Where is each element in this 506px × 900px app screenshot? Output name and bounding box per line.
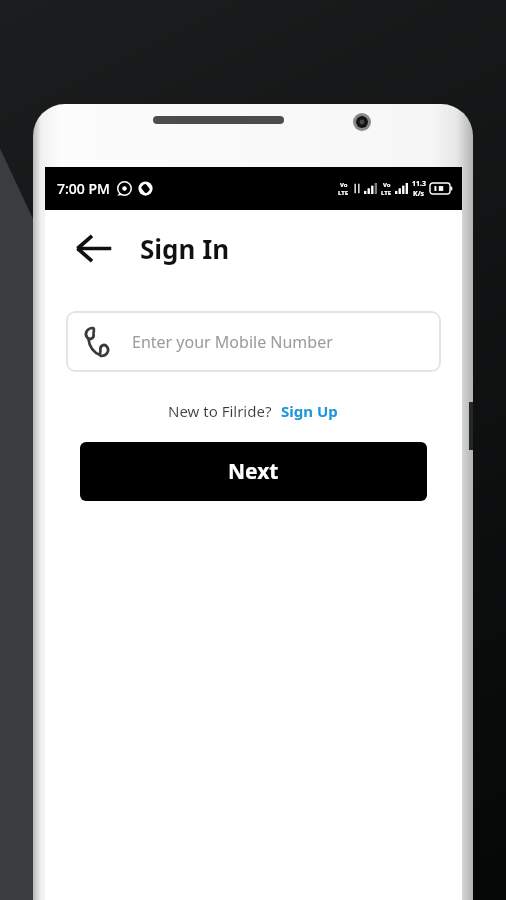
button[interactable]: Sign Up: [279, 399, 340, 423]
staticText: Vo: [340, 181, 348, 189]
staticText: New to Filride?: [168, 401, 272, 421]
button[interactable]: Next: [80, 442, 427, 501]
staticText: Next: [228, 457, 279, 486]
staticText: LTE: [381, 189, 392, 197]
staticText: Sign Up: [281, 401, 338, 421]
staticText: K/s: [413, 189, 425, 199]
button[interactable]: Enter your Mobile Number: [66, 311, 441, 372]
staticText: Sign In: [140, 231, 230, 266]
staticText: Enter your Mobile Number: [132, 331, 333, 353]
staticText: 11.3: [412, 179, 426, 189]
button[interactable]: Back: [71, 226, 116, 271]
staticText: 7:00 PM: [57, 179, 110, 198]
staticText: LTE: [338, 189, 349, 197]
staticText: Vo: [383, 181, 391, 189]
